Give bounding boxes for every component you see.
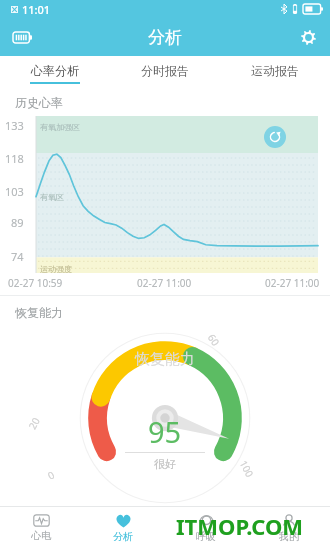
staticText: 02-27 11:00 <box>265 276 320 290</box>
staticText: ITMOP.COM <box>176 511 304 541</box>
staticText: 103 <box>5 184 24 199</box>
button[interactable]: 我的 <box>247 506 330 550</box>
staticText: 很好 <box>154 457 176 471</box>
button[interactable]: 运动报告 <box>220 56 330 87</box>
staticText: 133 <box>5 118 24 133</box>
staticText: 分时报告 <box>141 63 189 78</box>
staticText: 分析 <box>148 27 182 48</box>
staticText: 02-27 11:00 <box>137 276 192 290</box>
staticText: 心率分析 <box>31 63 79 78</box>
button[interactable]: Device battery <box>5 20 39 54</box>
staticText: 95 <box>148 412 182 451</box>
staticText: 118 <box>5 151 24 166</box>
staticText: 60 <box>205 331 223 349</box>
staticText: 有氧区 <box>40 192 64 202</box>
button[interactable]: Settings <box>291 20 325 54</box>
staticText: 分析 <box>113 530 133 543</box>
staticText: 02-27 10:59 <box>8 276 63 290</box>
staticText: 74 <box>11 249 24 264</box>
staticText: 心电 <box>31 529 51 542</box>
staticText: 我的 <box>279 530 299 543</box>
staticText: 11:01 <box>22 2 51 17</box>
staticText: 运动报告 <box>251 63 299 78</box>
button[interactable]: 分时报告 <box>110 56 220 87</box>
button[interactable]: 心电 <box>0 506 82 550</box>
button[interactable]: 呼吸 <box>164 506 247 550</box>
button[interactable]: Refresh <box>264 126 286 148</box>
staticText: 恢复能力 <box>15 305 63 320</box>
staticText: 有氧加强区 <box>40 122 80 132</box>
staticText: 历史心率 <box>15 95 63 110</box>
button[interactable]: 心率分析 <box>0 56 110 87</box>
staticText: 运动强度 <box>40 264 72 274</box>
staticText: 89 <box>11 215 24 230</box>
staticText: 100 <box>237 458 257 480</box>
staticText: 恢复能力 <box>135 350 195 369</box>
staticText: 0 <box>45 467 57 483</box>
staticText: 呼吸 <box>196 530 216 543</box>
button[interactable]: 分析 <box>82 506 164 550</box>
staticText: 20 <box>25 414 43 432</box>
